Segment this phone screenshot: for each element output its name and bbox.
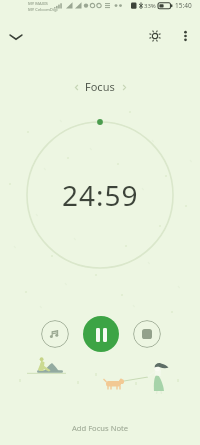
button[interactable]: Music xyxy=(41,320,69,348)
button[interactable]: Collapse xyxy=(3,24,29,50)
button[interactable]: Brightness xyxy=(142,23,168,49)
button[interactable]: Focus xyxy=(85,79,115,94)
button[interactable]: Next xyxy=(117,80,131,94)
staticText: 15:40 xyxy=(175,1,192,10)
button[interactable]: Add Focus Note xyxy=(0,418,200,438)
staticText: 24:59 xyxy=(62,176,139,214)
button[interactable]: More options xyxy=(172,23,198,49)
staticText: MY CelcomDigi xyxy=(28,7,58,13)
staticText: Focus xyxy=(85,79,115,94)
button[interactable]: Previous xyxy=(69,80,83,94)
staticText: 33% xyxy=(144,2,156,10)
staticText: MY MAXIS xyxy=(28,1,48,7)
staticText: Add Focus Note xyxy=(72,423,129,433)
button[interactable]: Stop xyxy=(133,320,161,348)
button[interactable]: Pause xyxy=(83,316,119,352)
